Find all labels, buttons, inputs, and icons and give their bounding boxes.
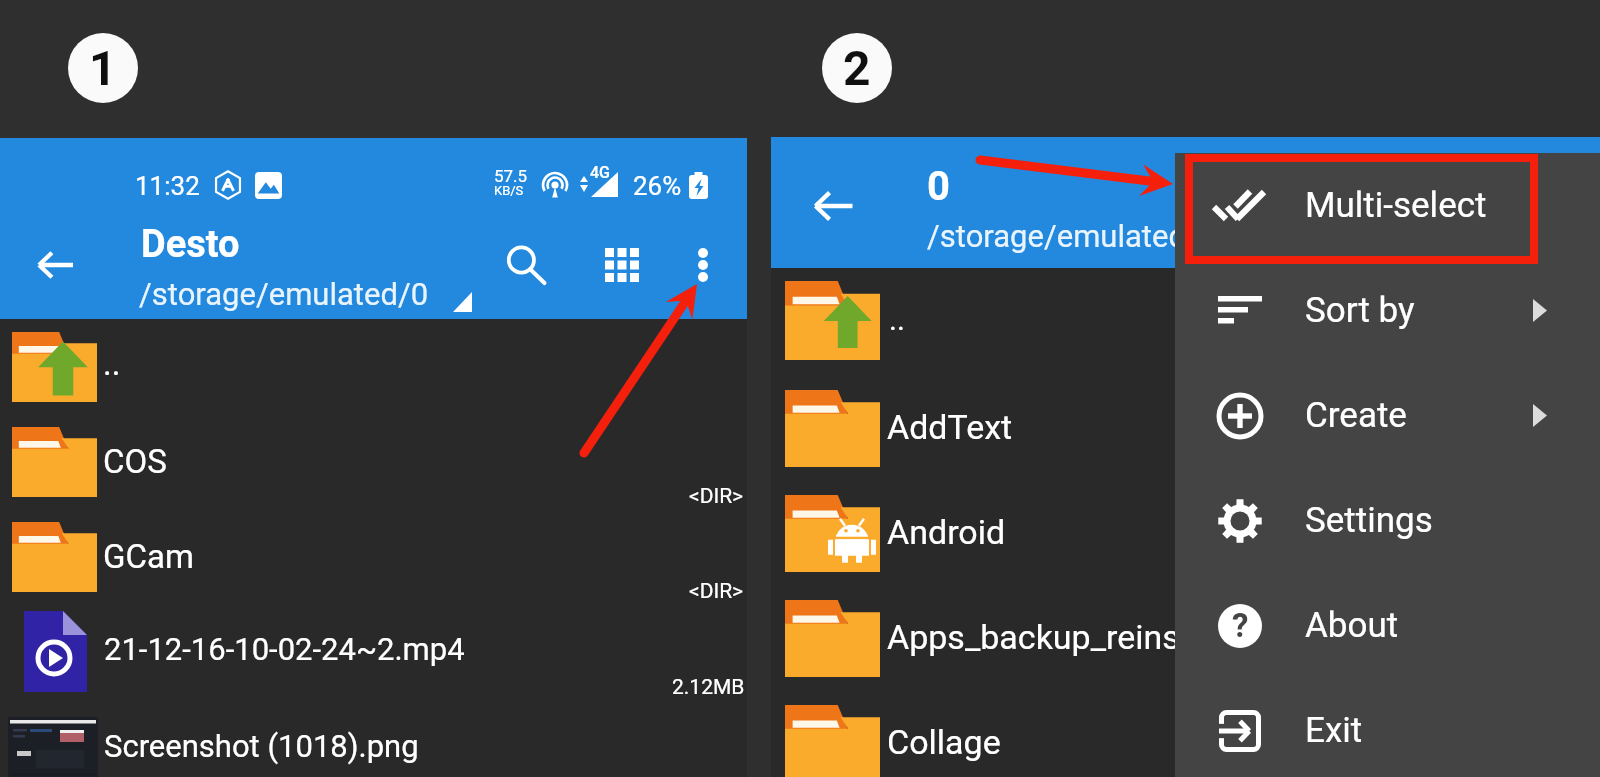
button[interactable]: Collage: [771, 688, 1600, 777]
staticText: Sort by: [1305, 290, 1415, 331]
staticText: 11:32: [135, 171, 200, 201]
button[interactable]: Screenshot (1018).png: [0, 699, 747, 777]
staticText: 26%: [633, 171, 682, 201]
staticText: About: [1305, 605, 1399, 646]
button[interactable]: Settings: [1175, 468, 1600, 573]
staticText: Screenshot (1018).png: [104, 728, 419, 764]
staticText: COS: [103, 442, 167, 481]
button[interactable]: ..: [771, 268, 1600, 373]
staticText: 4G: [590, 163, 610, 182]
button[interactable]: Apps_backup_reinstall: [771, 583, 1600, 688]
staticText: Exit: [1305, 710, 1363, 751]
button[interactable]: ?: [1175, 573, 1600, 678]
staticText: Android: [887, 512, 1006, 552]
staticText: Settings: [1305, 500, 1433, 541]
button[interactable]: ..: [0, 319, 747, 414]
staticText: ..: [103, 344, 121, 383]
button[interactable]: Back: [794, 167, 874, 245]
staticText: Multi-select: [1305, 185, 1487, 226]
staticText: KB/S: [494, 183, 524, 198]
staticText: 2: [843, 40, 871, 96]
staticText: /storage/emulated/0: [139, 276, 429, 312]
button[interactable]: Grid view: [586, 228, 658, 302]
staticText: Desto: [141, 222, 240, 267]
button[interactable]: COS: [0, 414, 747, 509]
button[interactable]: 21-12-16-10-02-24~2.mp4: [0, 604, 747, 699]
staticText: 21-12-16-10-02-24~2.mp4: [104, 631, 465, 667]
staticText: 0: [927, 163, 950, 210]
staticText: 2.12MB: [672, 675, 745, 700]
staticText: Collage: [887, 722, 1001, 762]
staticText: GCam: [103, 537, 194, 576]
button[interactable]: AddText: [771, 373, 1600, 478]
button[interactable]: Sort by: [1175, 258, 1600, 363]
button[interactable]: Multi-select: [1175, 153, 1600, 258]
button[interactable]: Create: [1175, 363, 1600, 468]
button[interactable]: Search: [490, 228, 562, 302]
staticText: Apps_backup_reinstall: [887, 617, 1227, 657]
staticText: ..: [889, 302, 905, 337]
button[interactable]: Exit: [1175, 678, 1600, 777]
staticText: AddText: [887, 407, 1013, 447]
staticText: <DIR>: [689, 579, 744, 604]
staticText: Create: [1305, 395, 1407, 436]
staticText: /storage/emulated/0: [927, 218, 1217, 254]
staticText: 57.5: [494, 166, 528, 186]
staticText: 1: [89, 40, 117, 96]
button[interactable]: GCam: [0, 509, 747, 604]
button[interactable]: Back: [16, 220, 96, 310]
staticText: ?: [1232, 606, 1249, 645]
staticText: <DIR>: [689, 484, 744, 509]
button[interactable]: More options: [670, 228, 736, 302]
button[interactable]: Android: [771, 478, 1600, 583]
